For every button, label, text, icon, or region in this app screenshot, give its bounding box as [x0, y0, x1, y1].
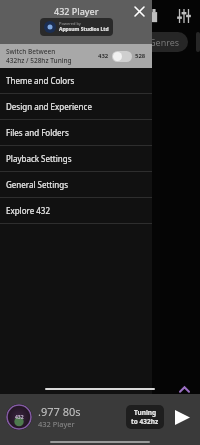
staticText: 432 Player: [54, 5, 99, 17]
staticText: General Settings: [6, 179, 69, 190]
button[interactable]: Genres: [140, 32, 188, 52]
staticText: Credits: [15, 426, 39, 436]
button[interactable]: Close: [130, 2, 148, 20]
staticText: 528: [135, 52, 146, 60]
button[interactable]: Design and Experience: [0, 94, 152, 119]
staticText: 432: [98, 52, 109, 60]
button[interactable]: 432: [6, 404, 32, 430]
staticText: Files and Folders: [6, 127, 69, 138]
button[interactable]: Expand player: [176, 384, 192, 394]
button[interactable]: Share: [55, 422, 98, 439]
button[interactable]: Bottle: [144, 6, 164, 26]
staticText: Playback Settings: [6, 153, 72, 164]
button[interactable]: Theme and Colors: [0, 68, 152, 93]
staticText: 432hz / 528hz Tuning: [6, 56, 72, 65]
staticText: Genres: [149, 36, 180, 48]
staticText: Powered by: [59, 21, 81, 26]
staticText: to 432hz: [131, 417, 159, 426]
button[interactable]: Playback Settings: [0, 146, 152, 171]
staticText: Explore 432: [6, 205, 50, 216]
button[interactable]: Files and Folders: [0, 120, 152, 145]
staticText: Design and Experience: [6, 101, 92, 112]
button[interactable]: Powered by: [44, 21, 109, 33]
button[interactable]: Filters: [174, 6, 194, 26]
staticText: Theme and Colors: [6, 75, 75, 86]
staticText: Share: [67, 426, 86, 436]
staticText: Switch Between: [6, 47, 56, 56]
staticText: .977 80s: [38, 404, 81, 419]
button[interactable]: Explore 432: [0, 198, 152, 223]
staticText: Appsum Studios Ltd: [59, 26, 109, 33]
staticText: 432: [15, 414, 24, 421]
staticText: 432 Player: [38, 419, 75, 429]
staticText: Tuning: [134, 408, 157, 417]
button[interactable]: Play: [170, 405, 194, 429]
button[interactable]: Credits: [5, 422, 49, 439]
button[interactable]: Tuning: [131, 408, 159, 426]
button[interactable]: General Settings: [0, 172, 152, 197]
button[interactable]: Switch Between: [6, 44, 146, 68]
button[interactable]: [196, 32, 200, 52]
button[interactable]: Rate: [104, 422, 147, 439]
staticText: Rate: [118, 426, 133, 436]
